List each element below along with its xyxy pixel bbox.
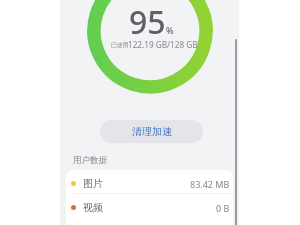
staticText: 视频 — [83, 201, 103, 214]
staticText: % — [166, 24, 174, 36]
staticText: 图片 — [83, 177, 103, 190]
staticText: 用户数据 — [73, 155, 107, 166]
button[interactable]: 视频 — [66, 194, 233, 217]
staticText: 122.19 GB/128 GB — [128, 39, 198, 50]
staticText: 95 — [129, 0, 166, 44]
button[interactable]: 清理加速 — [100, 120, 203, 143]
staticText: 已使用 — [111, 41, 129, 48]
staticText: 清理加速 — [132, 125, 172, 138]
button[interactable]: 图片 — [66, 170, 233, 193]
staticText: 0 B — [216, 202, 230, 214]
staticText: 83.42 MB — [190, 178, 230, 190]
